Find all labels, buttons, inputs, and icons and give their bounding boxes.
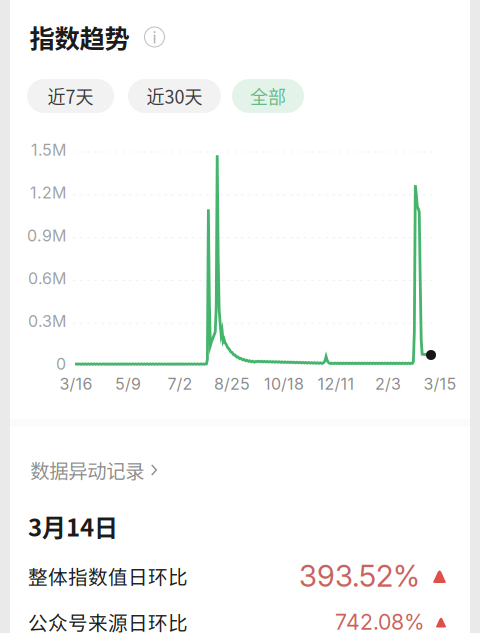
staticText: 1.5M [31, 140, 66, 160]
staticText: 全部 [250, 83, 286, 109]
staticText: 1.2M [30, 183, 66, 202]
staticText: 12/11 [317, 374, 354, 394]
staticText: 近30天 [146, 83, 202, 109]
staticText: 10/18 [264, 374, 304, 394]
staticText: 数据异动记录 [30, 456, 144, 484]
staticText: 整体指数值日环比 [28, 562, 188, 590]
staticText: 0.9M [27, 226, 66, 245]
staticText: 8/25 [214, 374, 250, 394]
button[interactable]: 全部 [232, 79, 304, 113]
staticText: 0.6M [28, 269, 66, 288]
button[interactable]: 数据异动记录 [25, 445, 163, 495]
staticText: 3/15 [423, 374, 456, 394]
staticText: 393.52% [299, 558, 420, 594]
staticText: 742.08% [335, 609, 425, 633]
staticText: i [152, 27, 156, 47]
staticText: 5/9 [115, 374, 141, 394]
staticText: 近7天 [47, 83, 93, 109]
staticText: 0 [56, 354, 66, 374]
button[interactable]: 近30天 [128, 79, 221, 113]
staticText: 3月14日 [28, 509, 118, 543]
staticText: 指数趋势 [29, 19, 129, 55]
staticText: 7/2 [167, 374, 192, 394]
staticText: 公众号来源日环比 [28, 608, 188, 633]
staticText: 3/16 [59, 374, 92, 394]
button[interactable]: 近7天 [27, 79, 114, 113]
staticText: 0.3M [28, 311, 66, 331]
staticText: 2/3 [375, 374, 401, 394]
